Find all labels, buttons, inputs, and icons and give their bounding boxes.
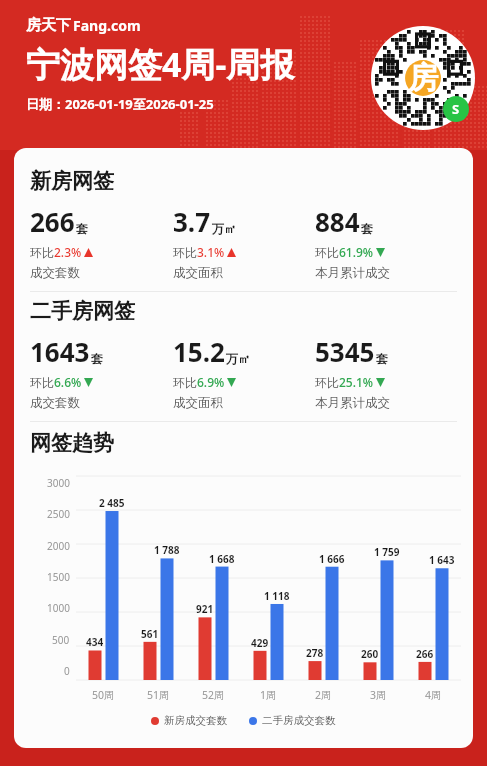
staticText: 本月累计成交: [315, 265, 390, 281]
staticText: 1周: [260, 688, 277, 702]
staticText: 万㎡: [226, 351, 250, 366]
staticText: 宁波网签4周-周报: [26, 41, 295, 87]
staticText: 51周: [147, 688, 170, 702]
staticText: 环比: [173, 245, 197, 260]
staticText: 3.7: [173, 204, 211, 239]
staticText: 成交面积: [173, 395, 223, 411]
staticText: 3000: [47, 476, 70, 490]
button[interactable]: 新房成交套数: [151, 714, 227, 727]
staticText: 2026-01-19至2026-01-25: [65, 95, 214, 113]
staticText: 环比: [173, 375, 197, 390]
staticText: 1500: [47, 570, 70, 584]
staticText: 套: [361, 221, 373, 236]
button[interactable]: 扫码关注房天下小程序: [371, 26, 475, 130]
staticText: 15.2: [173, 334, 225, 369]
staticText: 1 668: [209, 552, 235, 566]
staticText: 2.3%: [54, 244, 82, 260]
staticText: 0: [64, 664, 70, 678]
staticText: 1 643: [429, 553, 455, 567]
staticText: 1 759: [374, 545, 400, 559]
staticText: 5345: [315, 334, 375, 369]
staticText: 50周: [92, 688, 115, 702]
staticText: 1 666: [319, 552, 345, 566]
staticText: 434: [86, 635, 104, 649]
staticText: 成交面积: [173, 265, 223, 281]
staticText: 921: [196, 602, 214, 616]
staticText: 万㎡: [212, 221, 236, 236]
staticText: 52周: [202, 688, 225, 702]
staticText: 4周: [425, 688, 442, 702]
button[interactable]: 5345: [315, 334, 457, 411]
staticText: 网签趋势: [30, 430, 114, 456]
staticText: 266: [30, 204, 75, 239]
staticText: 环比: [315, 245, 339, 260]
staticText: 环比: [30, 375, 54, 390]
button[interactable]: 15.2: [173, 334, 315, 411]
staticText: 二手房网签: [30, 298, 135, 324]
staticText: 环比: [30, 245, 54, 260]
button[interactable]: 3.7: [173, 204, 315, 281]
staticText: 3周: [370, 688, 387, 702]
button[interactable]: 二手房成交套数: [249, 714, 336, 727]
staticText: 561: [141, 627, 159, 641]
staticText: 环比: [315, 375, 339, 390]
staticText: 套: [76, 221, 88, 236]
staticText: 套: [91, 351, 103, 366]
staticText: 266: [416, 647, 434, 661]
staticText: 6.9%: [197, 374, 225, 390]
button[interactable]: 1643: [30, 334, 173, 411]
staticText: 1000: [47, 601, 70, 615]
staticText: 本月累计成交: [315, 395, 390, 411]
staticText: 成交套数: [30, 395, 80, 411]
button[interactable]: 884: [315, 204, 457, 281]
staticText: 1 118: [264, 589, 290, 603]
staticText: 新房网签: [30, 168, 114, 194]
staticText: 1 788: [154, 543, 180, 557]
staticText: 6.6%: [54, 374, 82, 390]
staticText: 新房成交套数: [164, 714, 227, 727]
staticText: 500: [52, 633, 70, 647]
staticText: 1643: [30, 334, 90, 369]
staticText: 二手房成交套数: [262, 714, 336, 727]
button[interactable]: 266: [30, 204, 173, 281]
staticText: 278: [306, 646, 324, 660]
staticText: 2500: [47, 507, 70, 521]
staticText: Fang.com: [73, 16, 141, 35]
staticText: 2000: [47, 539, 70, 553]
staticText: 3.1%: [197, 244, 225, 260]
staticText: 429: [251, 636, 269, 650]
staticText: 日期：: [26, 96, 65, 112]
staticText: 260: [361, 647, 379, 661]
staticText: 成交套数: [30, 265, 80, 281]
staticText: 房: [408, 59, 438, 97]
staticText: 884: [315, 204, 360, 239]
staticText: 房天下: [26, 16, 71, 35]
staticText: 2周: [315, 688, 332, 702]
staticText: 套: [376, 351, 388, 366]
staticText: 25.1%: [339, 374, 374, 390]
staticText: 2 485: [99, 496, 125, 510]
staticText: 61.9%: [339, 244, 374, 260]
staticText: S: [452, 100, 460, 118]
